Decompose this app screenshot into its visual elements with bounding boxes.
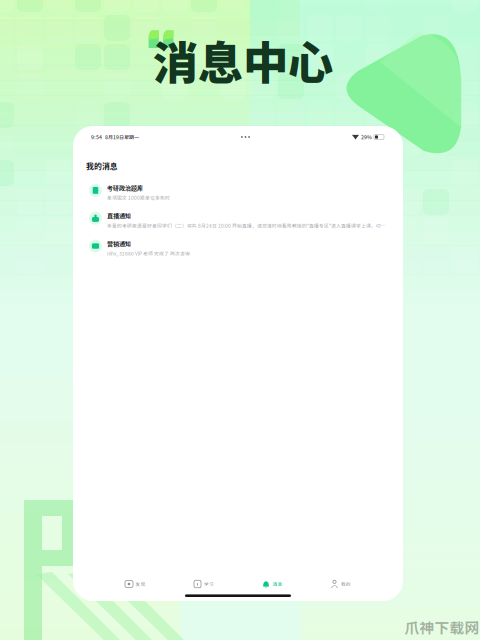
staticText: 单项国文 1000题单位多布时 [107, 194, 170, 201]
staticText: 亲爱的考研英语爱好者同学们（二）将在 8月24日 20:00 开始直播，请您准时… [107, 222, 390, 229]
staticText: 爪神下载网 [404, 616, 479, 638]
staticText: 发现 [135, 581, 145, 587]
staticText: 我的 [341, 581, 351, 587]
button[interactable]: 考研政治题库 [73, 178, 403, 206]
button[interactable]: 学习 [169, 574, 238, 594]
staticText: 我的消息 [86, 160, 118, 171]
staticText: 消息中心 [153, 27, 333, 93]
button[interactable]: 消息 [238, 574, 306, 594]
staticText: 考研政治题库 [107, 183, 143, 192]
button[interactable]: 营销通知 [73, 234, 403, 262]
button[interactable]: 直播通知 [73, 206, 403, 234]
staticText: 29% [361, 133, 372, 141]
staticText: nihx_32880 VIP 老师 完成了 两次咨询 [107, 250, 190, 257]
button[interactable]: 发现 [101, 574, 169, 594]
button[interactable]: 我的 [306, 574, 375, 594]
staticText: 9:54 8月19日星期一 [91, 133, 139, 141]
staticText: 营销通知 [107, 239, 131, 248]
staticText: 学习 [204, 581, 214, 587]
staticText: 直播通知 [107, 211, 131, 220]
staticText: 消息 [272, 581, 282, 587]
